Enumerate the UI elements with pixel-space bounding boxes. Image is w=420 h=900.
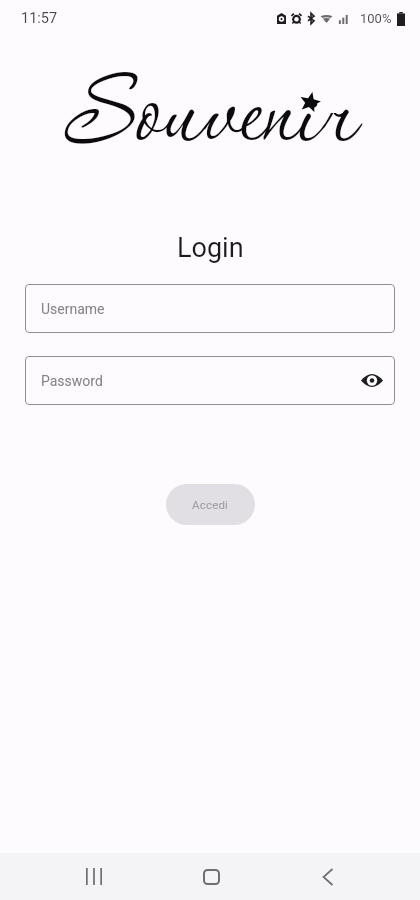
button[interactable]: Back [304,853,352,900]
staticText: Souvenir [64,46,355,192]
staticText: Login [177,232,244,264]
staticText: Password [41,373,103,389]
button[interactable]: Accedi [166,484,255,525]
button[interactable]: Password [25,356,395,405]
button[interactable]: Recent apps [70,853,118,900]
staticText: Username [41,301,105,317]
button[interactable]: Username [25,284,395,333]
staticText: 11:57 [21,10,58,27]
staticText: Accedi [192,498,229,511]
button[interactable]: Show password [357,365,387,395]
staticText: 100% [360,11,392,26]
button[interactable]: Home [187,853,235,900]
